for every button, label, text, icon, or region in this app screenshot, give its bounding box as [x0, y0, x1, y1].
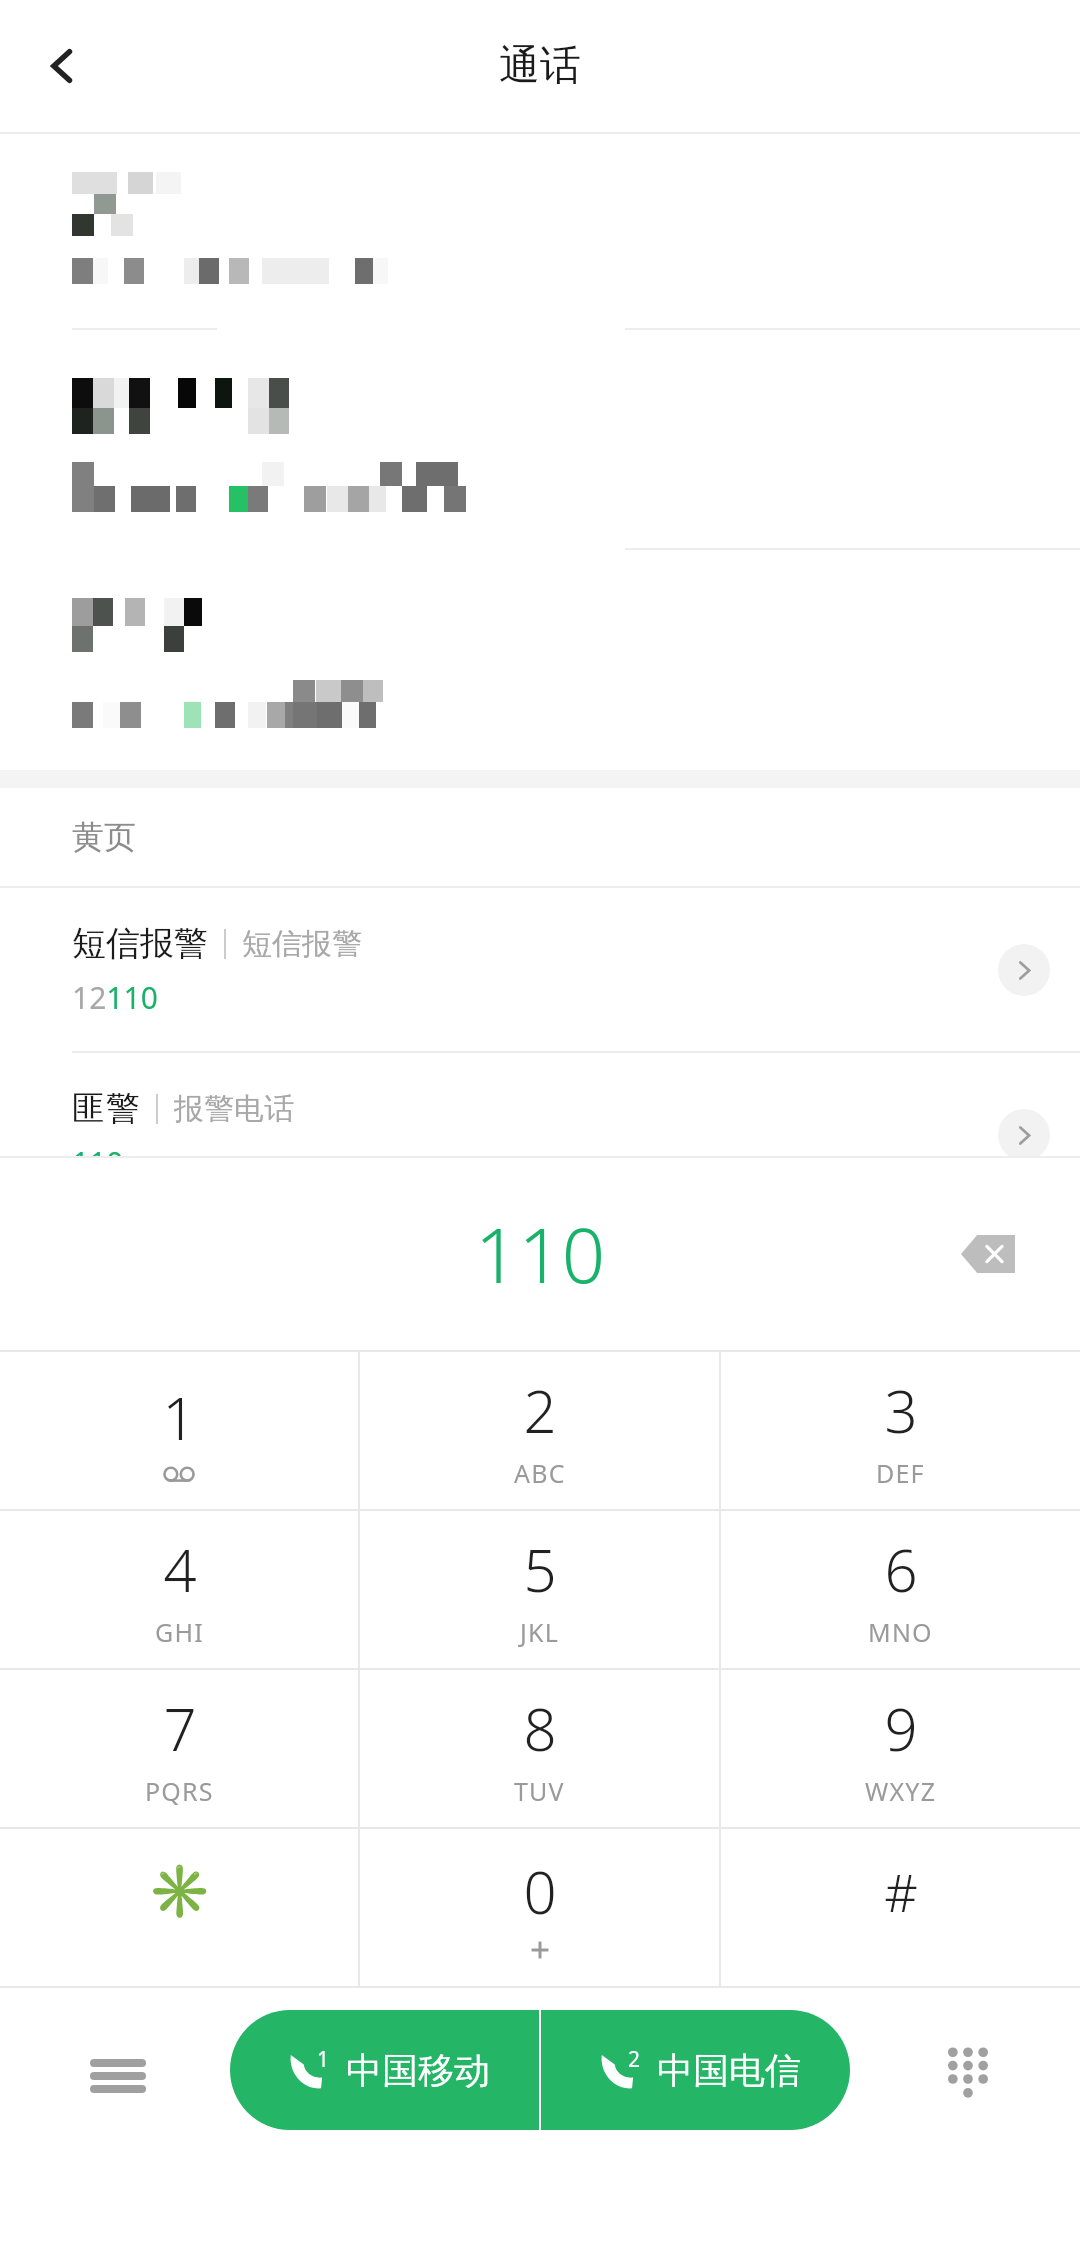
button[interactable]: #	[721, 1829, 1080, 1986]
staticText: 9	[884, 1689, 918, 1768]
button[interactable]: 7	[0, 1670, 358, 1827]
button[interactable]: 9	[721, 1670, 1080, 1827]
staticText: 1	[162, 1378, 196, 1457]
staticText: MNO	[868, 1615, 933, 1649]
button[interactable]: 4	[0, 1511, 358, 1668]
button[interactable]: 匪警	[0, 1053, 1080, 1216]
staticText: 8	[523, 1689, 557, 1768]
staticText: 通话	[499, 40, 581, 92]
staticText: 7	[163, 1689, 197, 1768]
staticText: 110	[475, 1202, 606, 1306]
staticText: 110	[72, 1142, 124, 1183]
staticText: PQRS	[145, 1774, 214, 1808]
staticText: 4	[163, 1530, 197, 1609]
staticText: 12110	[72, 977, 158, 1018]
staticText: 中国移动	[346, 2048, 490, 2093]
staticText: #	[884, 1856, 918, 1927]
staticText: ✳	[147, 1861, 212, 1922]
button[interactable]: Menu	[80, 2038, 156, 2114]
staticText: 短信报警	[242, 925, 362, 963]
button[interactable]: Back	[22, 26, 102, 106]
staticText: 匪警	[72, 1087, 140, 1130]
staticText: 黄页	[72, 817, 136, 857]
staticText: ABC	[514, 1456, 566, 1490]
button[interactable]: 8	[360, 1670, 719, 1827]
button[interactable]: 3	[721, 1352, 1080, 1509]
staticText: WXYZ	[865, 1774, 937, 1808]
staticText: 2	[523, 1371, 557, 1450]
button[interactable]: ✳	[0, 1829, 358, 1986]
staticText: 0	[523, 1852, 557, 1931]
button[interactable]: Dialpad	[928, 2032, 1008, 2112]
staticText: 报警电话	[174, 1090, 294, 1128]
button[interactable]: 0	[360, 1829, 719, 1986]
staticText: DEF	[876, 1456, 925, 1490]
staticText: 6	[884, 1530, 918, 1609]
staticText: 短信报警	[72, 922, 208, 965]
button[interactable]: 1	[230, 2010, 539, 2130]
staticText: 3	[884, 1371, 918, 1450]
button[interactable]: 1	[0, 1352, 358, 1509]
staticText: TUV	[514, 1774, 565, 1808]
staticText: GHI	[155, 1615, 204, 1649]
staticText: JKL	[520, 1615, 560, 1649]
button[interactable]: Delete	[948, 1214, 1028, 1294]
button[interactable]: 5	[360, 1511, 719, 1668]
staticText: 2	[628, 2045, 641, 2074]
staticText: 1	[317, 2045, 330, 2074]
button[interactable]: 2	[541, 2010, 850, 2130]
button[interactable]: 短信报警	[0, 888, 1080, 1051]
staticText: 5	[523, 1530, 557, 1609]
button[interactable]: 2	[360, 1352, 719, 1509]
staticText: 中国电信	[657, 2048, 801, 2093]
button[interactable]: 6	[721, 1511, 1080, 1668]
